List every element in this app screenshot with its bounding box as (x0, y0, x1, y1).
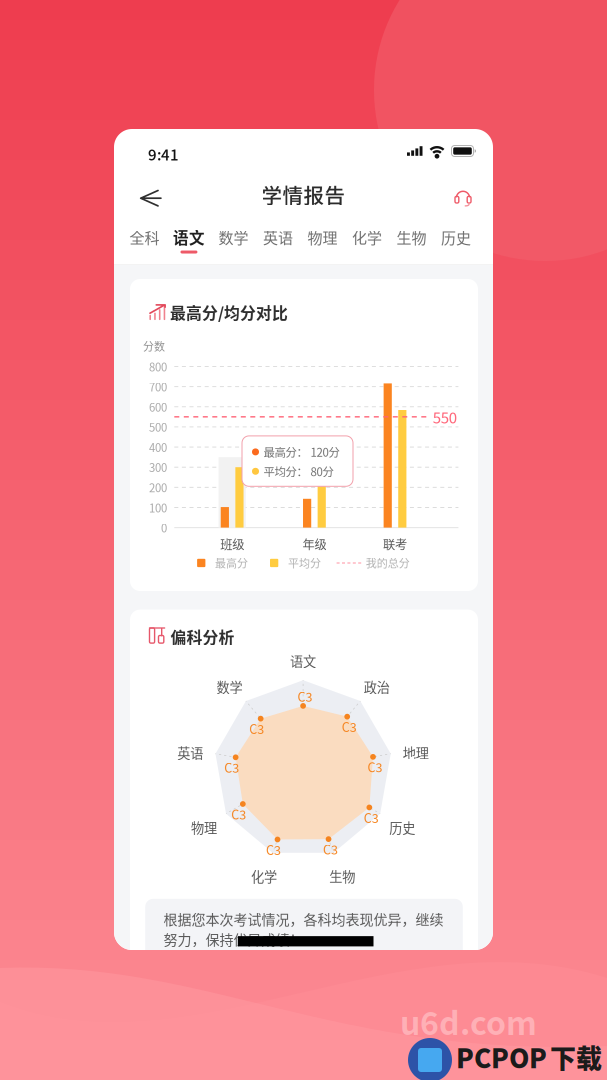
staticText: 700 (149, 378, 167, 395)
button[interactable]: 语文 (167, 221, 211, 265)
staticText: 年级 (302, 535, 326, 553)
staticText: 0 (161, 519, 167, 536)
button[interactable]: 英语 (256, 221, 300, 265)
staticText: PCPOP (456, 1038, 547, 1076)
staticText: 历史 (389, 818, 415, 837)
staticText: 政治 (364, 677, 390, 696)
staticText: 550 (433, 406, 457, 428)
staticText: 英语 (263, 226, 293, 248)
staticText: 500 (149, 419, 167, 435)
staticText: 平均分： 80分 (263, 463, 333, 480)
staticText: 400 (149, 439, 167, 455)
staticText: 全科 (129, 226, 159, 248)
staticText: 生物 (329, 866, 355, 885)
staticText: 学情报告 (261, 180, 345, 209)
staticText: 生物 (396, 226, 426, 248)
button[interactable]: 历史 (434, 221, 478, 265)
button[interactable]: 物理 (300, 221, 345, 265)
staticText: 化学 (352, 226, 382, 248)
staticText: 最高分/均分对比 (170, 301, 288, 323)
staticText: 平均分 (288, 555, 321, 571)
staticText: 语文 (290, 651, 316, 670)
staticText: 最高分 (215, 555, 248, 571)
staticText: 根据您本次考试情况，各科均表现优异，继续努力，保持优异成绩！ (163, 909, 443, 949)
staticText: 物理 (191, 818, 217, 837)
staticText: C3 (298, 687, 313, 705)
staticText: 分数 (143, 338, 165, 354)
staticText: 联考 (383, 535, 407, 553)
staticText: C3 (266, 840, 281, 858)
staticText: 600 (149, 399, 167, 415)
button[interactable]: 化学 (345, 221, 389, 265)
staticText: 历史 (441, 226, 471, 248)
staticText: C3 (224, 758, 239, 776)
staticText: 数学 (216, 677, 242, 696)
staticText: 偏科分析 (170, 625, 234, 648)
staticText: 数学 (218, 226, 248, 248)
staticText: 我的总分 (366, 555, 410, 571)
staticText: C3 (249, 720, 264, 738)
staticText: 9:41 (148, 143, 179, 165)
staticText: C3 (364, 808, 379, 826)
staticText: 下载 (550, 1038, 602, 1076)
staticText: C3 (342, 718, 357, 736)
staticText: 物理 (307, 226, 337, 248)
button[interactable]: 全科 (122, 221, 167, 265)
staticText: 语文 (173, 226, 205, 248)
button[interactable]: 数学 (211, 221, 256, 265)
staticText: C3 (323, 840, 338, 858)
button[interactable]: 返回 (128, 179, 172, 217)
staticText: 班级 (220, 535, 244, 553)
staticText: 地理 (403, 743, 429, 762)
staticText: 最高分： 120分 (263, 444, 339, 460)
button[interactable]: 在线客服 (443, 179, 483, 217)
staticText: C3 (231, 805, 246, 823)
staticText: 200 (149, 479, 167, 495)
staticText: 800 (149, 358, 167, 375)
staticText: C3 (367, 758, 382, 776)
staticText: u6d.com (400, 998, 537, 1044)
button[interactable]: 生物 (389, 221, 434, 265)
staticText: 100 (149, 499, 167, 516)
staticText: 300 (149, 459, 167, 475)
staticText: 化学 (251, 866, 277, 885)
staticText: 英语 (177, 743, 203, 762)
